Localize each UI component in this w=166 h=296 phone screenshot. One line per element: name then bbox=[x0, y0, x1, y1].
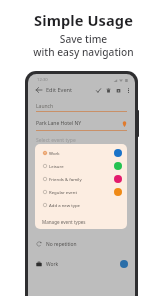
staticText: Park Lane Hotel NY bbox=[36, 120, 82, 127]
button[interactable]: Delete bbox=[103, 85, 113, 95]
button[interactable]: Back bbox=[34, 85, 44, 95]
staticText: Manage event types bbox=[42, 219, 86, 225]
staticText: Save time with easy navigation bbox=[33, 32, 134, 59]
staticText: Work bbox=[49, 150, 60, 156]
staticText: Simple Usage bbox=[34, 10, 133, 30]
button[interactable]: Work bbox=[36, 254, 128, 274]
button[interactable]: Leisure bbox=[35, 159, 127, 172]
staticText: 12:30 bbox=[37, 77, 48, 83]
staticText: Regular event bbox=[49, 189, 77, 195]
button[interactable]: Add a new type bbox=[35, 198, 127, 211]
button[interactable]: Regular event bbox=[35, 185, 127, 198]
staticText: Friends & family bbox=[49, 176, 82, 182]
staticText: Work bbox=[46, 261, 59, 268]
button[interactable]: Duplicate bbox=[113, 85, 123, 95]
button[interactable]: More options bbox=[123, 85, 133, 95]
staticText: Edit Event bbox=[46, 86, 73, 94]
button[interactable]: Save bbox=[93, 85, 103, 95]
staticText: Select event type bbox=[36, 137, 76, 144]
staticText: Launch bbox=[36, 103, 54, 110]
staticText: Add a new type bbox=[49, 202, 80, 208]
button[interactable]: Friends & family bbox=[35, 172, 127, 185]
staticText: No repetition bbox=[46, 241, 77, 248]
button[interactable]: Work bbox=[35, 146, 127, 159]
staticText: Leisure bbox=[49, 163, 64, 169]
button[interactable]: No repetition bbox=[36, 234, 128, 254]
button[interactable]: Manage event types bbox=[35, 214, 127, 229]
